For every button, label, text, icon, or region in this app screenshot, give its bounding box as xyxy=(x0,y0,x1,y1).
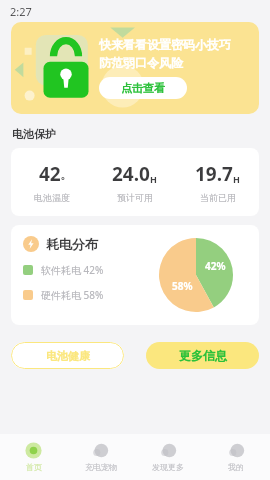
button[interactable]: 42 xyxy=(11,148,259,216)
staticText: 点击查看 xyxy=(121,81,165,95)
staticText: 硬件耗电 58% xyxy=(41,288,104,302)
staticText: H xyxy=(233,173,240,185)
staticText: 防范弱口令风险 xyxy=(99,55,183,70)
staticText: 19.7 xyxy=(195,161,233,187)
staticText: ° xyxy=(61,173,65,185)
staticText: 预计可用 xyxy=(117,192,153,203)
staticText: 耗电分布 xyxy=(46,236,98,252)
staticText: 当前已用 xyxy=(200,192,236,203)
staticText: 充电宠物 xyxy=(85,462,117,472)
button[interactable]: 点击查看 xyxy=(99,77,187,99)
staticText: 发现更多 xyxy=(152,462,184,472)
staticText: 电池健康 xyxy=(46,349,90,363)
staticText: H xyxy=(150,173,157,185)
button[interactable]: 充电宠物 xyxy=(67,434,134,480)
staticText: 42 xyxy=(39,161,61,187)
button[interactable]: 耗电分布 xyxy=(11,225,259,325)
staticText: 软件耗电 42% xyxy=(41,263,104,277)
button[interactable]: 发现更多 xyxy=(134,434,202,480)
button[interactable]: 更多信息 xyxy=(146,342,259,369)
staticText: 42% xyxy=(205,259,226,273)
staticText: 首页 xyxy=(26,462,42,472)
staticText: 58% xyxy=(172,279,193,293)
staticText: 24.0 xyxy=(112,161,150,187)
staticText: 电池温度 xyxy=(34,192,70,203)
staticText: 更多信息 xyxy=(179,348,227,363)
staticText: 快来看看设置密码小技巧 xyxy=(99,37,231,52)
staticText: 我的 xyxy=(228,462,244,472)
button[interactable]: 快来看看设置密码小技巧 xyxy=(11,22,259,114)
staticText: 电池保护 xyxy=(12,127,56,141)
staticText: 2:27 xyxy=(10,4,32,19)
button[interactable]: 电池健康 xyxy=(11,342,124,369)
button[interactable]: 我的 xyxy=(202,434,270,480)
button[interactable]: 首页 xyxy=(0,434,67,480)
